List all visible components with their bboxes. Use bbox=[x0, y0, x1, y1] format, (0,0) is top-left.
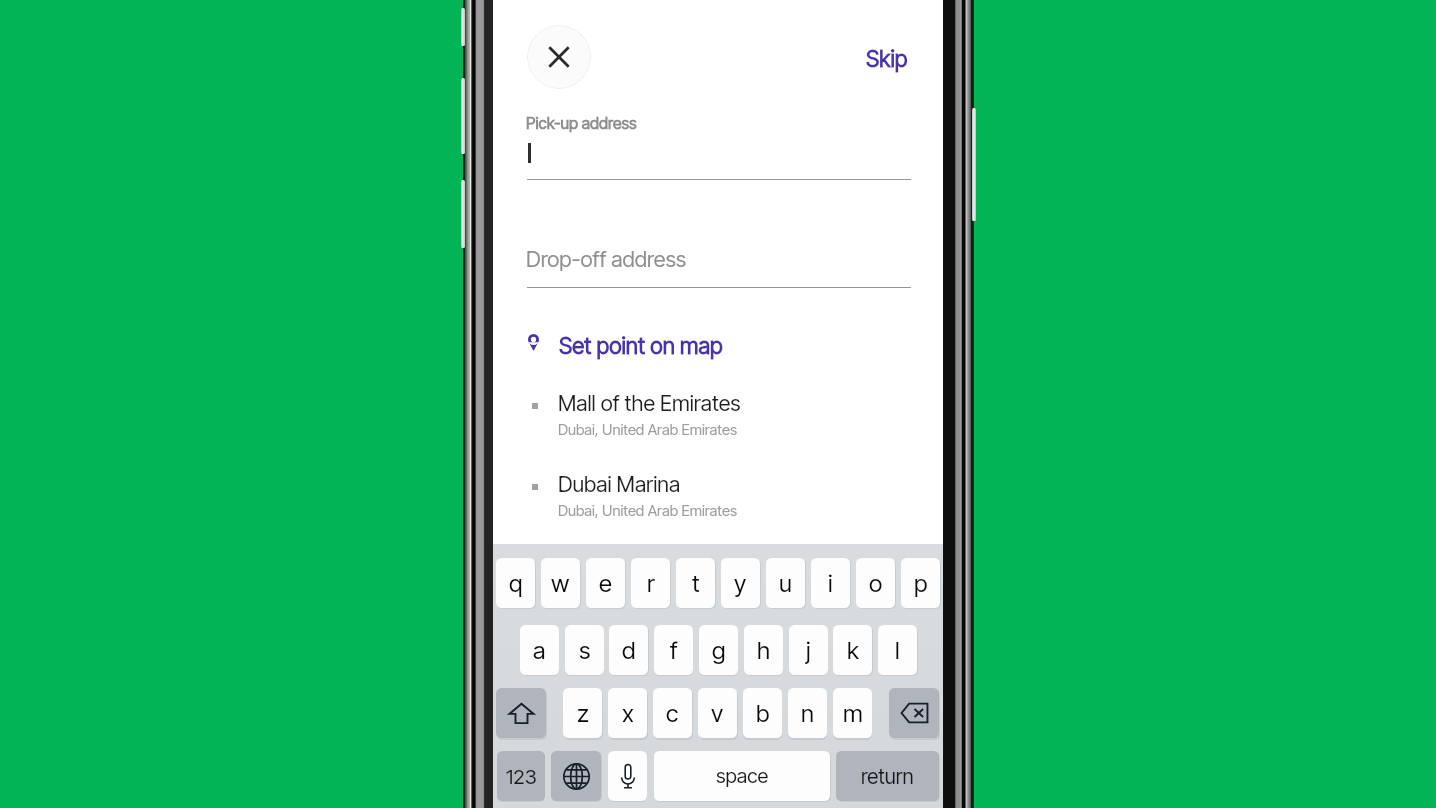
staticText: l bbox=[895, 636, 900, 665]
staticText: m bbox=[843, 699, 863, 728]
button[interactable]: h bbox=[744, 625, 783, 675]
staticText: t bbox=[692, 569, 700, 598]
staticText: d bbox=[622, 636, 636, 665]
staticText: u bbox=[779, 569, 792, 598]
staticText: y bbox=[734, 569, 747, 598]
button[interactable]: e bbox=[586, 558, 625, 608]
button[interactable]: z bbox=[563, 688, 602, 738]
staticText: e bbox=[599, 569, 612, 598]
button[interactable]: m bbox=[833, 688, 872, 738]
staticText: w bbox=[551, 569, 570, 598]
button[interactable]: Set point on map bbox=[518, 324, 768, 362]
staticText: Skip bbox=[866, 45, 908, 72]
button[interactable]: Dubai Marina bbox=[493, 464, 943, 532]
button[interactable]: v bbox=[698, 688, 737, 738]
button[interactable]: k bbox=[833, 625, 872, 675]
staticText: f bbox=[670, 636, 678, 665]
button[interactable]: Close bbox=[527, 25, 591, 89]
button[interactable]: i bbox=[811, 558, 850, 608]
staticText: Drop-off address bbox=[526, 246, 687, 272]
staticText: c bbox=[666, 699, 679, 728]
button[interactable]: f bbox=[654, 625, 693, 675]
staticText: Mall of the Emirates bbox=[558, 390, 741, 416]
button[interactable]: t bbox=[676, 558, 715, 608]
staticText: a bbox=[533, 636, 546, 665]
button[interactable]: Change language bbox=[551, 751, 601, 801]
button[interactable]: l bbox=[878, 625, 917, 675]
staticText: i bbox=[828, 569, 833, 598]
staticText: Dubai, United Arab Emirates bbox=[558, 502, 737, 520]
staticText: v bbox=[711, 699, 724, 728]
button[interactable]: x bbox=[608, 688, 647, 738]
staticText: 123 bbox=[506, 764, 537, 789]
button[interactable]: w bbox=[541, 558, 580, 608]
button[interactable]: q bbox=[496, 558, 535, 608]
button[interactable]: Dictate bbox=[608, 751, 647, 801]
staticText: Dubai Marina bbox=[558, 471, 681, 497]
button[interactable]: Shift bbox=[496, 688, 546, 738]
button[interactable]: a bbox=[520, 625, 559, 675]
button[interactable]: o bbox=[856, 558, 895, 608]
staticText: q bbox=[509, 569, 523, 598]
button[interactable]: Backspace bbox=[889, 688, 939, 738]
staticText: z bbox=[577, 699, 589, 728]
button[interactable]: Mall of the Emirates bbox=[493, 383, 943, 451]
button[interactable]: return bbox=[836, 751, 939, 801]
button[interactable]: y bbox=[721, 558, 760, 608]
staticText: Dubai, United Arab Emirates bbox=[558, 421, 737, 439]
staticText: r bbox=[647, 569, 655, 598]
button[interactable]: u bbox=[766, 558, 805, 608]
button[interactable]: s bbox=[565, 625, 604, 675]
button[interactable]: space bbox=[654, 751, 830, 801]
button[interactable]: n bbox=[788, 688, 827, 738]
staticText: b bbox=[756, 699, 770, 728]
staticText: k bbox=[847, 636, 859, 665]
staticText: n bbox=[801, 699, 814, 728]
staticText: p bbox=[914, 569, 928, 598]
button[interactable]: b bbox=[743, 688, 782, 738]
button[interactable]: c bbox=[653, 688, 692, 738]
button[interactable]: p bbox=[901, 558, 940, 608]
staticText: g bbox=[712, 636, 726, 665]
button[interactable]: g bbox=[699, 625, 738, 675]
staticText: x bbox=[622, 699, 634, 728]
button[interactable]: j bbox=[789, 625, 828, 675]
button[interactable]: Skip bbox=[854, 37, 920, 80]
staticText: j bbox=[806, 636, 811, 665]
button[interactable]: 123 bbox=[497, 751, 545, 801]
staticText: h bbox=[757, 636, 771, 665]
staticText: return bbox=[861, 764, 914, 789]
button[interactable]: d bbox=[609, 625, 648, 675]
staticText: space bbox=[716, 764, 769, 788]
staticText: s bbox=[579, 636, 591, 665]
button[interactable]: r bbox=[631, 558, 670, 608]
staticText: Pick-up address bbox=[526, 113, 637, 132]
staticText: o bbox=[869, 569, 883, 598]
staticText: Set point on map bbox=[559, 332, 723, 359]
